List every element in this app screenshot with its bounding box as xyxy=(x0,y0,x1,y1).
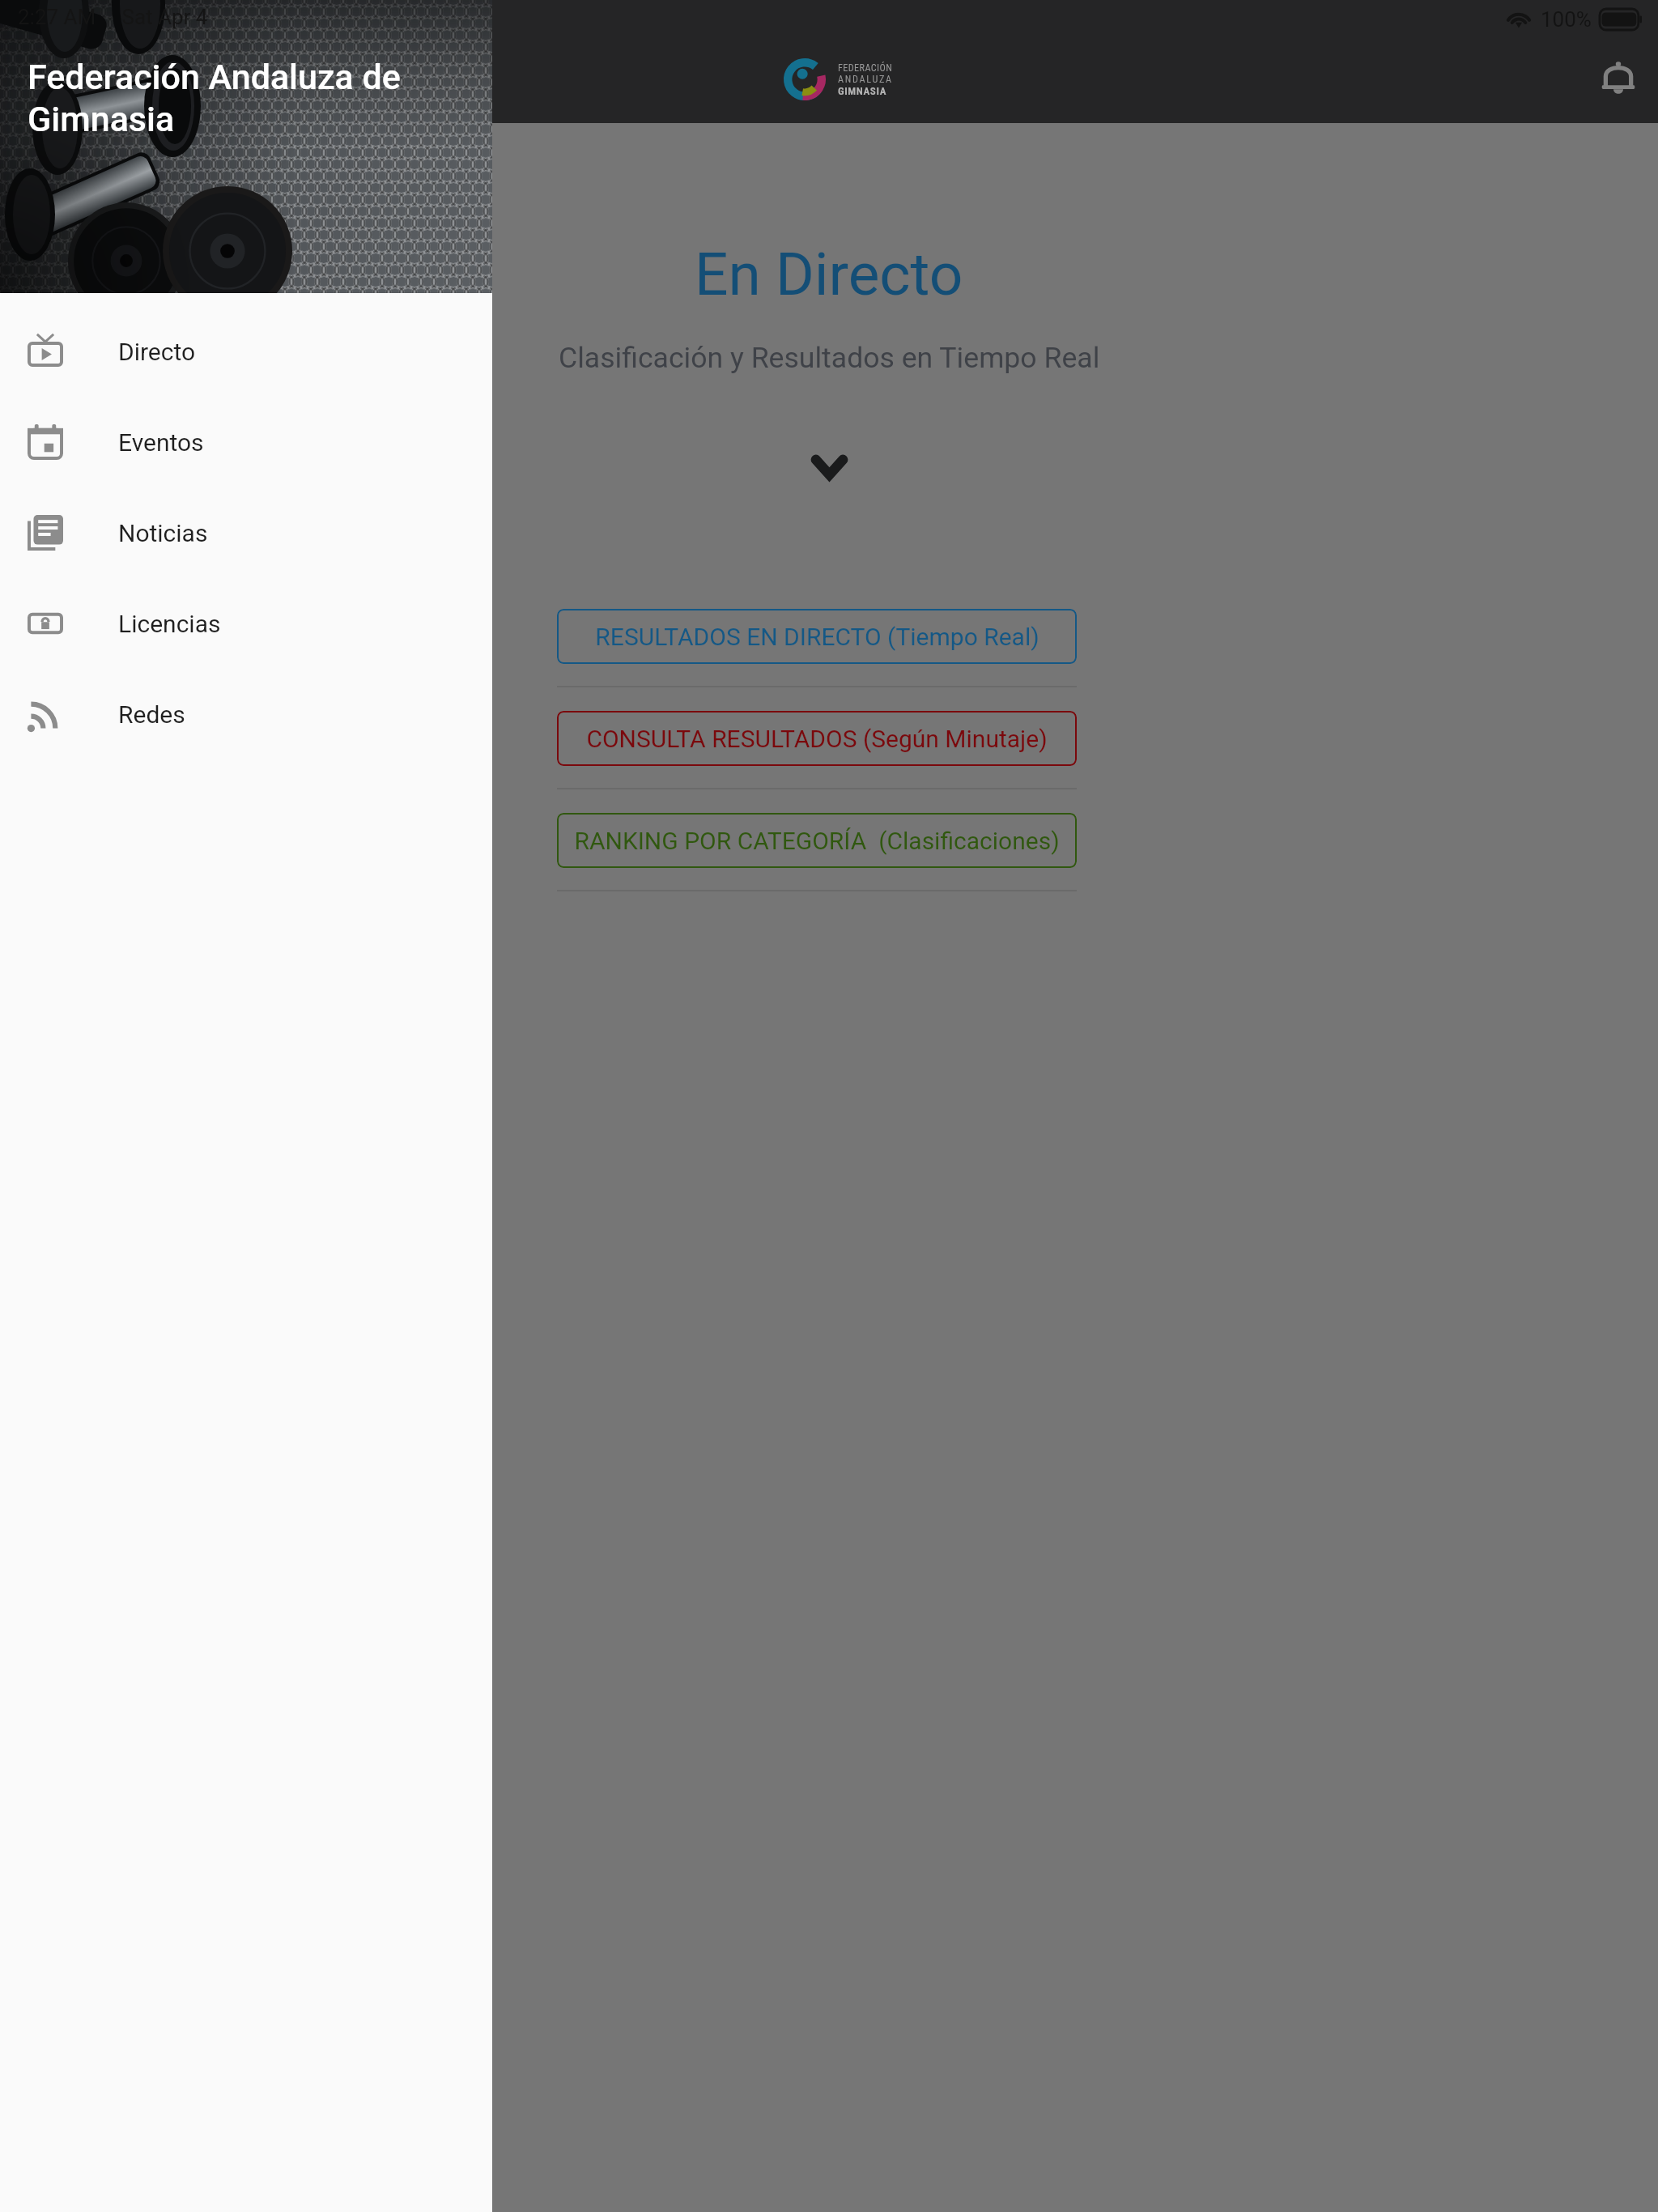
staticText: RESULTADOS EN DIRECTO (Tiempo Real) xyxy=(595,623,1039,651)
button[interactable]: CONSULTA RESULTADOS (Según Minutaje) xyxy=(557,711,1077,766)
staticText: Directo xyxy=(118,338,196,366)
staticText: RANKING POR CATEGORÍA (Clasificaciones) xyxy=(574,827,1060,855)
staticText: FEDERACIÓN xyxy=(838,62,893,74)
button[interactable]: Eventos xyxy=(0,397,492,487)
button[interactable]: Noticias xyxy=(0,487,492,578)
staticText: CONSULTA RESULTADOS (Según Minutaje) xyxy=(586,725,1048,753)
staticText: Eventos xyxy=(118,428,204,457)
staticText: Licencias xyxy=(118,610,221,638)
button[interactable]: Directo xyxy=(0,306,492,397)
staticText: Clasificación y Resultados en Tiempo Rea… xyxy=(559,341,1100,375)
staticText: ANDALUZA xyxy=(838,74,893,85)
staticText: 2:27 AM Sat Apr 4 xyxy=(18,5,208,29)
button[interactable]: RANKING POR CATEGORÍA (Clasificaciones) xyxy=(557,813,1077,868)
button[interactable]: Notifications xyxy=(1582,42,1655,115)
button[interactable]: RESULTADOS EN DIRECTO (Tiempo Real) xyxy=(557,609,1077,664)
staticText: Federación Andaluza de Gimnasia xyxy=(28,57,432,140)
staticText: Noticias xyxy=(118,519,208,547)
button[interactable]: Licencias xyxy=(0,578,492,669)
button[interactable]: Redes xyxy=(0,669,492,759)
staticText: 100% xyxy=(1541,7,1592,32)
staticText: En Directo xyxy=(695,240,963,309)
staticText: GIMNASIA xyxy=(838,85,887,97)
staticText: Redes xyxy=(118,700,185,729)
